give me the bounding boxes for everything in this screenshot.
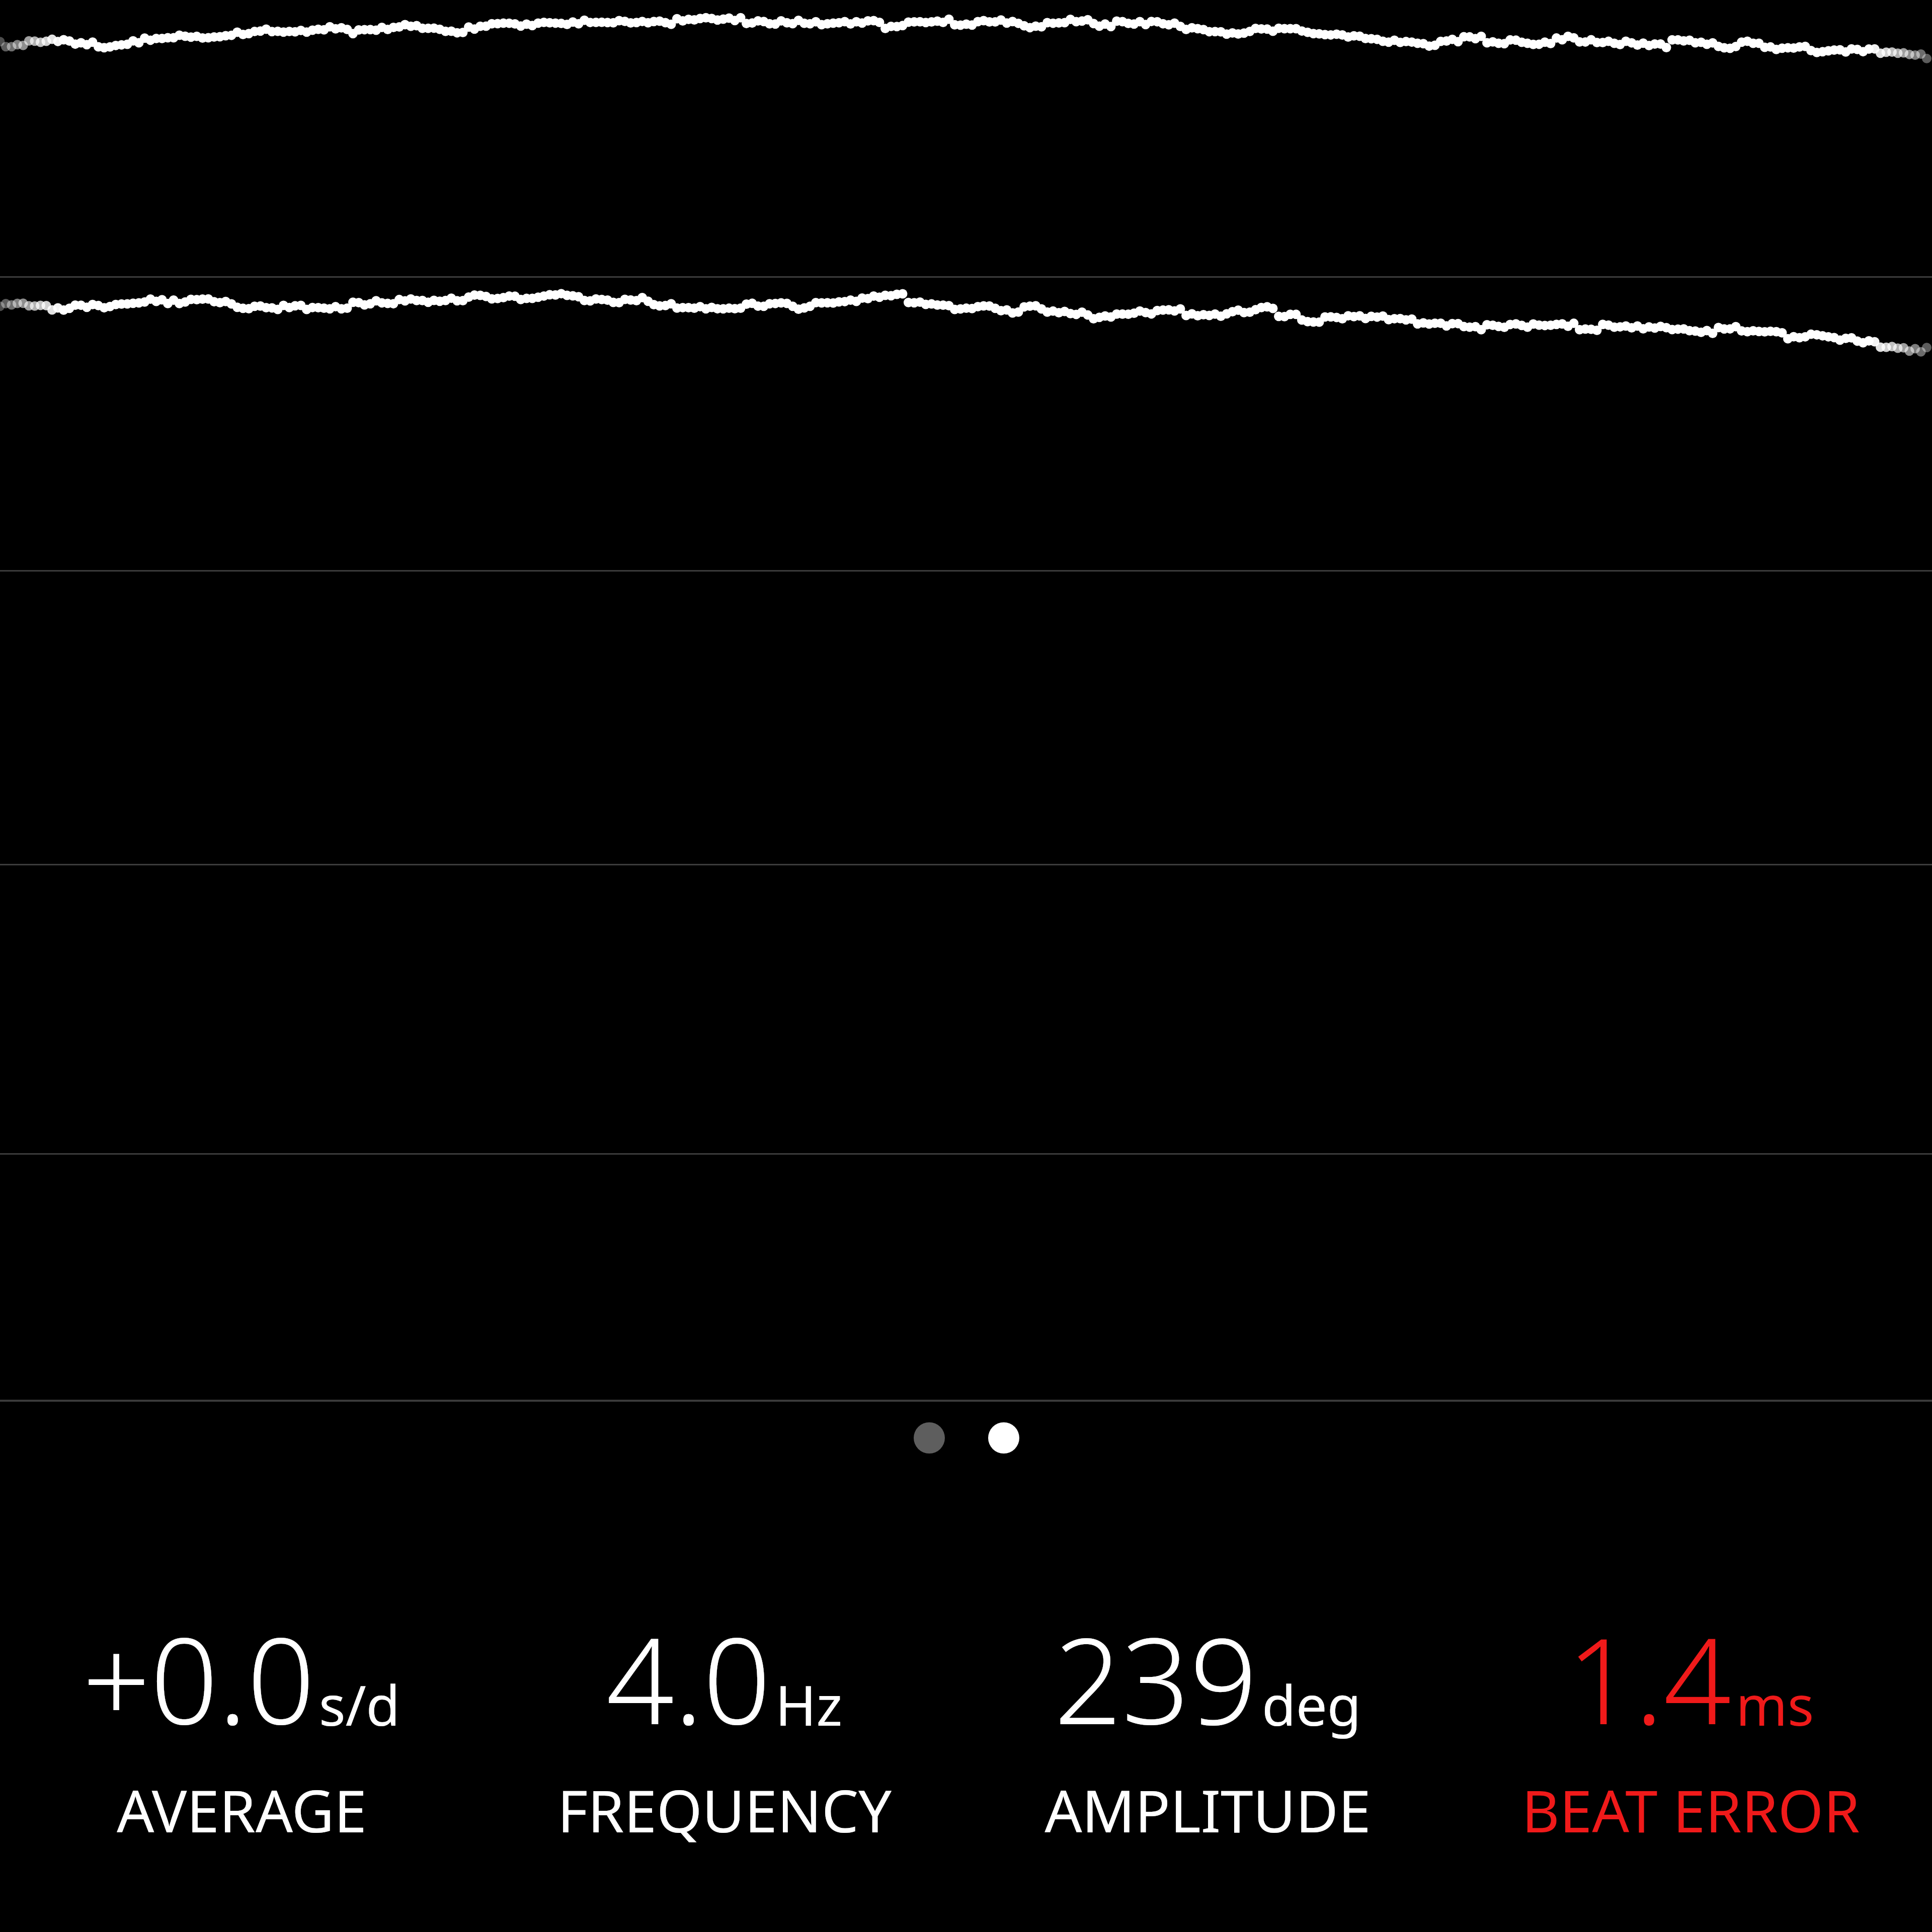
staticText: s/d: [319, 1666, 400, 1742]
button[interactable]: 239: [966, 1597, 1449, 1849]
button[interactable]: 4.0: [483, 1597, 966, 1849]
staticText: FREQUENCY: [557, 1770, 892, 1849]
button[interactable]: +0.0: [0, 1597, 483, 1849]
staticText: 4.0: [606, 1597, 771, 1759]
staticText: 239: [1054, 1597, 1258, 1759]
staticText: AVERAGE: [117, 1770, 367, 1849]
button[interactable]: Page 2 of 2: [914, 1422, 1019, 1454]
staticText: 1.4: [1567, 1597, 1732, 1759]
staticText: BEAT ERROR: [1521, 1770, 1860, 1849]
staticText: +0.0: [83, 1597, 315, 1759]
staticText: Hz: [775, 1666, 843, 1742]
staticText: deg: [1262, 1666, 1361, 1742]
button[interactable]: 1.4: [1449, 1597, 1932, 1849]
staticText: AMPLITUDE: [1044, 1770, 1371, 1849]
staticText: ms: [1736, 1666, 1814, 1742]
